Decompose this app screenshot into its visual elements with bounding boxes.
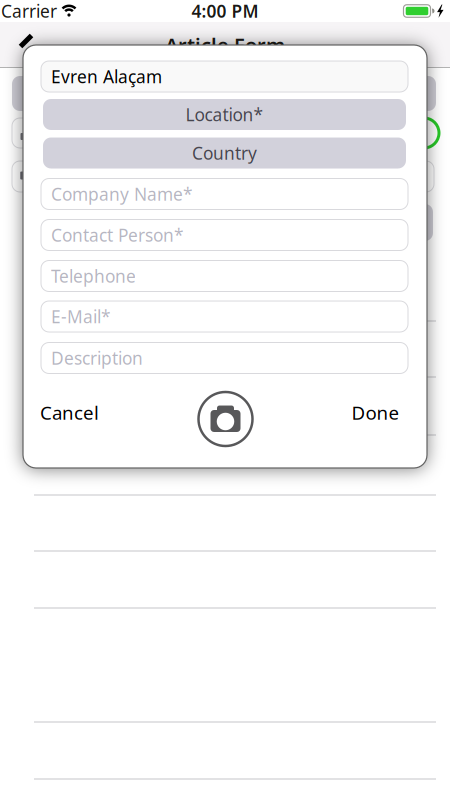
staticText: Carrier [1,0,57,22]
staticText: Location* [185,103,263,126]
button[interactable]: Company Name* [41,178,408,209]
staticText: Contact Person* [51,223,184,246]
button[interactable]: Done [351,400,399,425]
button[interactable]: E-Mail* [41,301,408,332]
button[interactable]: Take Photo [198,392,252,446]
staticText: Done [351,400,399,425]
staticText: Cancel [40,400,99,425]
button[interactable]: Country [43,137,406,168]
staticText: E-Mail* [51,305,111,328]
button[interactable]: Description [41,342,408,373]
staticText: Company Name* [51,182,193,205]
button[interactable]: Contact Person* [41,219,408,250]
staticText: Evren Alaçam [51,65,162,88]
staticText: 4:00 PM [191,0,258,22]
button[interactable]: Telephone [41,260,408,291]
staticText: Article Form [165,32,285,58]
staticText: Description [51,346,143,369]
button[interactable]: Evren Alaçam [41,61,408,92]
staticText: Telephone [51,264,136,287]
staticText: Country [192,141,257,164]
button[interactable]: Cancel [40,400,99,425]
button[interactable]: Location* [43,99,406,130]
button[interactable]: Edit [17,31,34,50]
